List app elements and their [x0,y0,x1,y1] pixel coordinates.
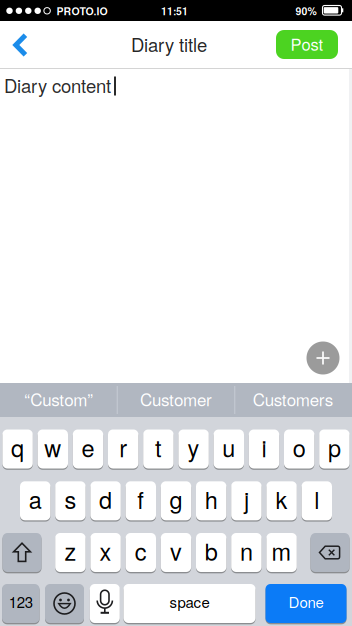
button[interactable]: f [126,481,156,522]
staticText: Post [290,32,323,55]
staticText: “Custom” [24,387,93,411]
staticText: m [272,534,292,567]
button[interactable]: Post [276,30,338,59]
staticText: Customer [140,387,212,411]
button[interactable]: o [284,429,314,470]
staticText: s [64,482,76,516]
staticText: r [119,430,127,464]
staticText: h [205,482,218,516]
staticText: 90% [295,3,316,18]
staticText: PROTO.IO [56,3,107,18]
button[interactable]: v [161,533,191,573]
staticText: Diary title [131,31,207,57]
button[interactable]: d [90,481,121,522]
button[interactable] [90,584,120,624]
button[interactable]: w [38,429,68,470]
button[interactable]: p [319,429,350,470]
button[interactable] [45,584,84,624]
staticText: o [293,430,306,464]
button[interactable] [8,31,30,59]
button[interactable]: j [231,481,262,522]
button[interactable]: k [266,481,297,522]
button[interactable]: i [249,429,279,470]
staticText: u [222,430,235,464]
button[interactable] [306,341,339,374]
button[interactable] [310,533,349,573]
staticText: x [100,534,112,567]
button[interactable]: Customers [235,382,351,416]
button[interactable]: q [2,429,33,470]
button[interactable]: c [126,533,156,573]
staticText: q [11,430,24,464]
staticText: v [170,534,182,567]
button[interactable]: h [196,481,226,522]
staticText: n [240,534,253,567]
staticText: l [314,482,319,516]
button[interactable]: z [55,533,86,573]
button[interactable]: l [302,481,332,522]
staticText: 123 [9,591,33,612]
button[interactable]: Done [265,584,346,624]
button[interactable]: m [266,533,297,573]
staticText: Diary content [4,72,111,98]
button[interactable]: n [231,533,262,573]
staticText: w [44,430,61,464]
button[interactable]: b [196,533,226,573]
button[interactable]: Customer [118,382,234,416]
button[interactable]: r [108,429,138,470]
button[interactable]: space [123,584,255,624]
staticText: i [261,430,266,464]
staticText: f [137,482,144,516]
staticText: k [276,482,288,516]
button[interactable]: x [90,533,121,573]
staticText: a [29,482,42,516]
staticText: p [328,430,341,464]
button[interactable]: g [161,481,191,522]
button[interactable]: s [55,481,86,522]
staticText: Done [288,591,323,612]
button[interactable]: 123 [2,584,40,624]
staticText: Customers [253,387,334,411]
button[interactable]: y [178,429,209,470]
button[interactable]: “Custom” [1,382,117,416]
button[interactable]: t [143,429,174,470]
button[interactable] [2,533,41,573]
staticText: b [205,534,218,567]
staticText: j [244,482,249,516]
staticText: d [99,482,112,516]
button[interactable]: e [73,429,103,470]
staticText: 11:51 [161,3,188,18]
staticText: space [169,591,209,612]
staticText: z [64,534,76,567]
staticText: t [155,430,162,464]
staticText: c [135,534,147,567]
staticText: y [188,430,200,464]
staticText: e [81,430,94,464]
button[interactable]: u [214,429,244,470]
staticText: g [169,482,182,516]
button[interactable]: a [20,481,50,522]
